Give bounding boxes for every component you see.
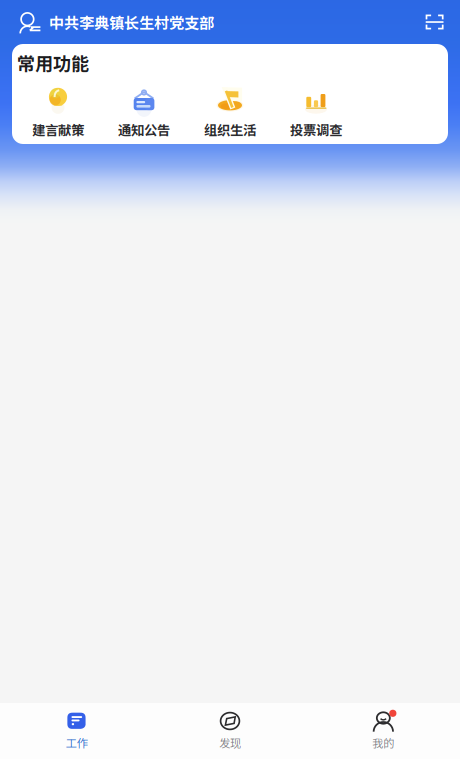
staticText: 常用功能 (17, 49, 89, 76)
staticText: 通知公告 (118, 120, 170, 139)
button[interactable]: 组织生活 (187, 82, 273, 140)
staticText: 建言献策 (32, 120, 84, 139)
staticText: 我的 (372, 734, 394, 751)
staticText: 投票调查 (290, 120, 342, 139)
button[interactable]: 通知公告 (101, 82, 187, 140)
staticText: 组织生活 (204, 120, 256, 139)
staticText: 工作 (66, 734, 88, 751)
button[interactable]: 建言献策 (15, 82, 101, 140)
staticText: 中共李典镇长生村党支部 (49, 11, 214, 33)
button[interactable]: 切换身份 (18, 6, 43, 38)
button[interactable]: 工作 (0, 703, 153, 759)
button[interactable]: 投票调查 (273, 82, 359, 140)
button[interactable]: 发现 (153, 703, 307, 759)
button[interactable]: 我的 (307, 703, 460, 759)
button[interactable]: 扫一扫 (424, 4, 446, 39)
staticText: 发现 (219, 734, 241, 751)
